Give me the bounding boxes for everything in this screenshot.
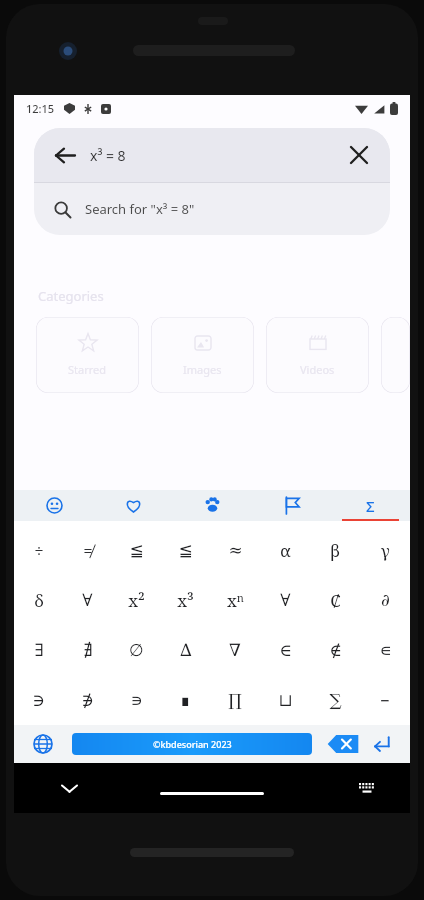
- staticText: −: [380, 689, 390, 712]
- staticText: Search for "x³ = 8": [85, 200, 195, 218]
- button[interactable]: ∏: [210, 675, 260, 725]
- button[interactable]: Change keyboard language: [28, 729, 58, 759]
- button[interactable]: Switch keyboard: [354, 775, 380, 801]
- button[interactable]: ∉: [310, 625, 360, 675]
- button[interactable]: Back: [50, 140, 80, 170]
- button[interactable]: ©kbdesorian 2023: [72, 733, 312, 755]
- staticText: α: [280, 539, 291, 562]
- button[interactable]: ∇: [210, 625, 260, 675]
- staticText: ∊: [379, 640, 392, 660]
- button[interactable]: ∅: [112, 625, 161, 675]
- button[interactable]: Back: [34, 128, 390, 182]
- button[interactable]: ∎: [161, 675, 210, 725]
- button[interactable]: ∀: [260, 575, 310, 625]
- button[interactable]: ∀: [63, 575, 112, 625]
- staticText: 12:15: [26, 101, 55, 116]
- button[interactable]: Search for "x³ = 8": [34, 183, 390, 235]
- staticText: ∇: [229, 640, 241, 660]
- button[interactable]: ∈: [260, 625, 310, 675]
- staticText: ∆: [180, 640, 192, 660]
- staticText: γ: [381, 539, 390, 562]
- staticText: Σ: [366, 496, 375, 516]
- staticText: ∍: [130, 690, 143, 710]
- staticText: ∀: [280, 590, 291, 610]
- button[interactable]: Images: [151, 317, 254, 393]
- staticText: ∏: [228, 690, 242, 710]
- button[interactable]: Hearts: [94, 490, 173, 521]
- button[interactable]: ≦: [112, 525, 161, 575]
- staticText: Categories: [38, 287, 104, 305]
- staticText: ÷: [34, 539, 44, 562]
- button[interactable]: Symbols: [331, 490, 410, 521]
- staticText: ∈: [279, 640, 292, 660]
- button[interactable]: ∊: [360, 625, 410, 675]
- staticText: ∀: [82, 590, 93, 610]
- button[interactable]: x³: [161, 575, 210, 625]
- button[interactable]: β: [310, 525, 360, 575]
- button[interactable]: ∃: [14, 625, 63, 675]
- button[interactable]: ∌: [63, 675, 112, 725]
- staticText: x³ = 8: [90, 146, 126, 165]
- button[interactable]: α: [260, 525, 310, 575]
- staticText: xⁿ: [227, 589, 244, 612]
- staticText: ≈: [228, 540, 243, 560]
- button[interactable]: Videos: [266, 317, 369, 393]
- staticText: x³: [177, 589, 194, 612]
- button[interactable]: −: [360, 675, 410, 725]
- staticText: Ȼ: [330, 589, 341, 612]
- staticText: ≦: [129, 540, 144, 560]
- button[interactable]: ∑: [310, 675, 360, 725]
- staticText: Starred: [68, 362, 107, 377]
- staticText: ⊔: [278, 690, 293, 710]
- button[interactable]: γ: [360, 525, 410, 575]
- button[interactable]: δ: [14, 575, 63, 625]
- button[interactable]: Ȼ: [310, 575, 360, 625]
- button[interactable]: ≈: [210, 525, 260, 575]
- button[interactable]: ∋: [14, 675, 63, 725]
- staticText: ∉: [329, 640, 342, 660]
- staticText: ∄: [83, 640, 93, 660]
- button[interactable]: ∂: [360, 575, 410, 625]
- staticText: Images: [183, 362, 222, 377]
- button[interactable]: Enter: [366, 729, 396, 759]
- button[interactable]: Starred: [36, 317, 139, 393]
- button[interactable]: [381, 317, 410, 393]
- button[interactable]: Backspace: [326, 732, 360, 756]
- staticText: ∎: [180, 690, 191, 710]
- button[interactable]: ∍: [112, 675, 161, 725]
- button[interactable]: Animals: [173, 490, 252, 521]
- button[interactable]: ≦: [161, 525, 210, 575]
- staticText: ∑: [329, 690, 342, 710]
- staticText: ∂: [381, 590, 390, 610]
- staticText: ∅: [129, 640, 144, 660]
- staticText: x²: [128, 589, 145, 612]
- button[interactable]: ∆: [161, 625, 210, 675]
- staticText: ∃: [34, 640, 44, 660]
- staticText: ©kbdesorian 2023: [153, 738, 232, 750]
- staticText: δ: [34, 589, 44, 612]
- staticText: β: [330, 539, 340, 562]
- staticText: ∋: [32, 690, 45, 710]
- button[interactable]: x²: [112, 575, 161, 625]
- staticText: ≠: [83, 539, 93, 562]
- button[interactable]: Emoji: [14, 490, 94, 521]
- button[interactable]: Clear: [344, 140, 374, 170]
- button[interactable]: ≠: [63, 525, 112, 575]
- button[interactable]: ⊔: [260, 675, 310, 725]
- button[interactable]: ∄: [63, 625, 112, 675]
- staticText: ∌: [81, 690, 94, 710]
- button[interactable]: Flags: [252, 490, 331, 521]
- button[interactable]: xⁿ: [210, 575, 260, 625]
- staticText: ≦: [178, 540, 193, 560]
- button[interactable]: ÷: [14, 525, 63, 575]
- staticText: Videos: [300, 362, 335, 377]
- button[interactable]: Hide keyboard: [56, 775, 82, 801]
